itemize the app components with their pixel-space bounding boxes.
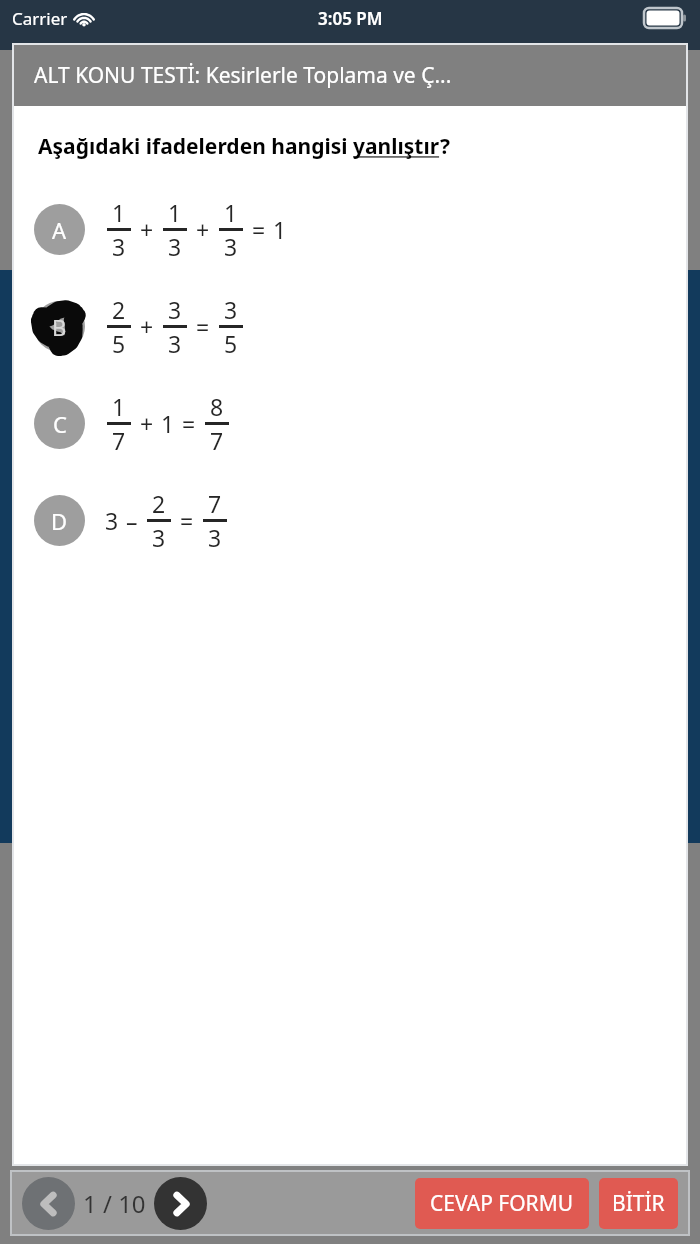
staticText: 3 (168, 231, 182, 262)
button[interactable]: CEVAP FORMU (415, 1178, 589, 1229)
staticText: 7 (210, 425, 224, 456)
staticText: 1 / 10 (83, 1187, 146, 1220)
staticText: 7 (112, 425, 126, 456)
staticText: Carrier (12, 7, 68, 30)
staticText: + (140, 311, 154, 342)
button[interactable]: C (14, 391, 686, 456)
staticText: 1 (112, 197, 126, 228)
staticText: D (51, 506, 68, 536)
staticText: 1 (112, 391, 126, 422)
button[interactable]: B (14, 294, 686, 359)
staticText: ALT KONU TESTİ: Kesirlerle Toplama ve Ç.… (34, 61, 452, 90)
staticText: 3:05 PM (318, 7, 383, 30)
button[interactable]: A (14, 197, 686, 262)
staticText: = (252, 214, 266, 245)
staticText: 1 (161, 408, 175, 439)
button[interactable]: ALT KONU TESTİ: Kesirlerle Toplama ve Ç.… (14, 45, 686, 106)
staticText: – (126, 505, 138, 536)
staticText: = (180, 505, 194, 536)
staticText: = (196, 311, 210, 342)
staticText: 3 (152, 522, 166, 553)
staticText: 1 (224, 197, 238, 228)
staticText: 1 (168, 197, 182, 228)
button[interactable]: Next question (154, 1177, 207, 1230)
staticText: = (182, 408, 196, 439)
staticText: + (196, 214, 210, 245)
button[interactable]: BİTİR (599, 1178, 678, 1229)
staticText: 5 (112, 328, 126, 359)
staticText: B (52, 312, 67, 342)
staticText: + (140, 214, 154, 245)
staticText: C (53, 409, 67, 439)
staticText: 7 (208, 488, 222, 519)
staticText: 3 (105, 505, 119, 536)
staticText: 3 (168, 328, 182, 359)
staticText: 5 (224, 328, 238, 359)
staticText: BİTİR (612, 1189, 665, 1218)
staticText: 2 (112, 294, 126, 325)
button[interactable]: D (14, 488, 686, 553)
button[interactable]: Previous question (22, 1177, 75, 1230)
staticText: 3 (112, 231, 126, 262)
staticText: Aşağıdaki ifadelerden hangisi (38, 132, 353, 161)
staticText: CEVAP FORMU (430, 1189, 574, 1218)
staticText: 1 (273, 214, 287, 245)
staticText: A (52, 215, 67, 245)
staticText: 3 (208, 522, 222, 553)
staticText: yanlıştır (353, 132, 440, 161)
staticText: 8 (210, 391, 224, 422)
staticText: ? (440, 132, 451, 161)
staticText: 3 (224, 231, 238, 262)
staticText: 3 (168, 294, 182, 325)
staticText: 2 (152, 488, 166, 519)
staticText: + (140, 408, 154, 439)
staticText: 3 (224, 294, 238, 325)
